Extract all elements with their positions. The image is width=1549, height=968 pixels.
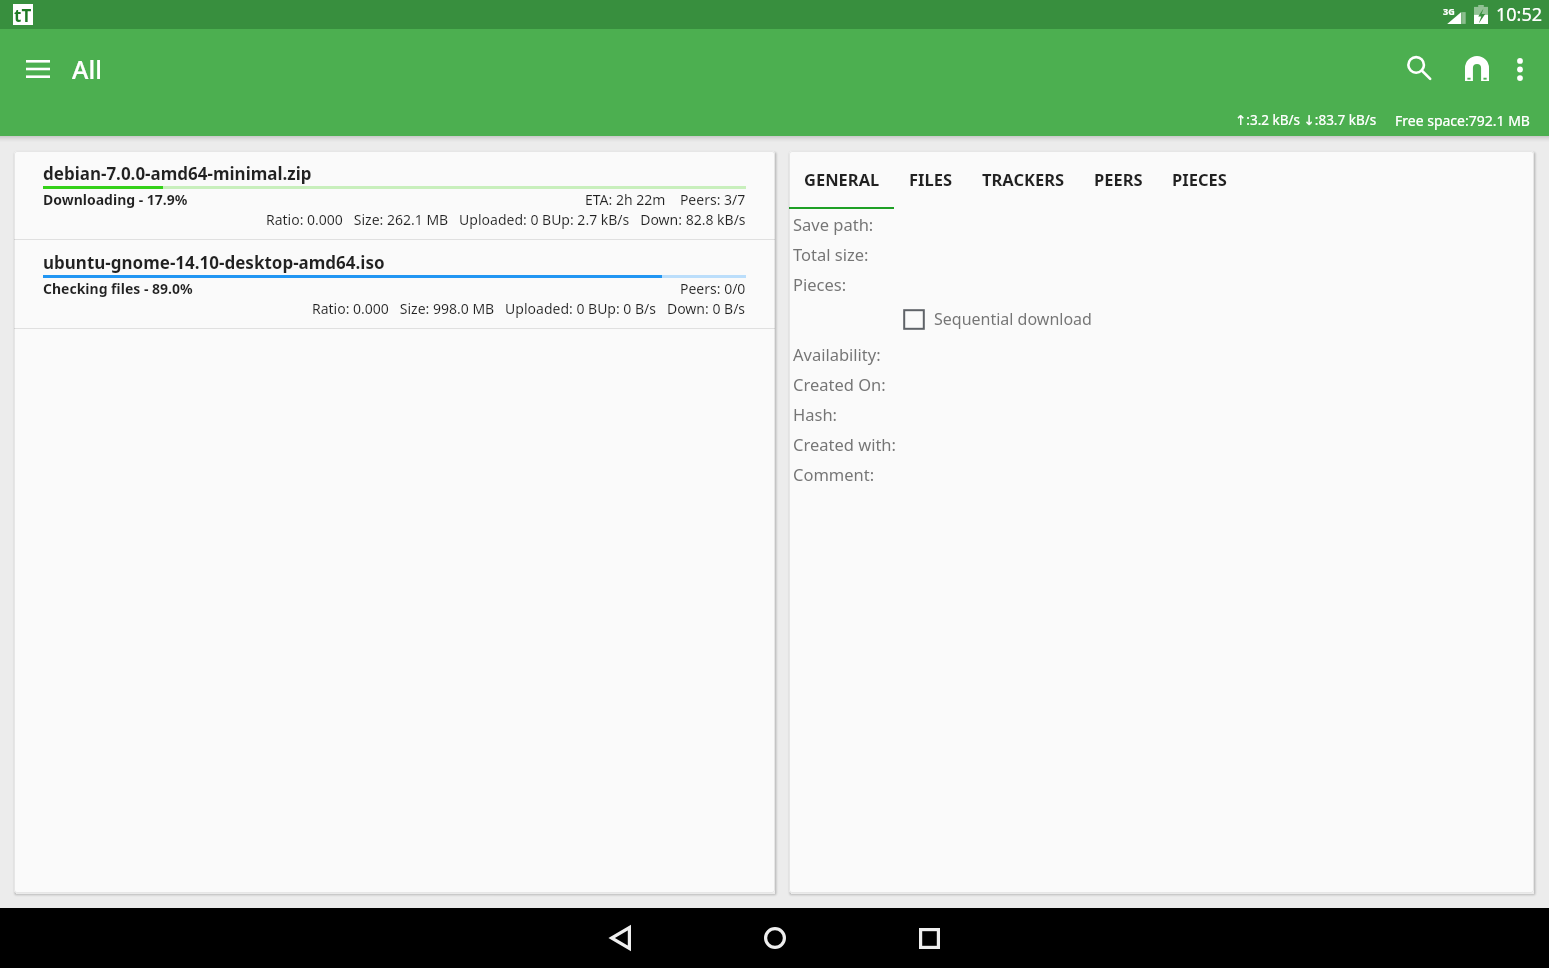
button[interactable]: Recent apps [899,918,959,958]
button[interactable]: Search [1395,44,1443,92]
staticText: Availability: [793,343,881,365]
staticText: Save path: [793,213,874,235]
button[interactable]: debian-7.0.0-amd64-minimal.zip [14,151,775,239]
staticText: PIECES [1172,168,1227,190]
button[interactable]: More options [1498,47,1542,91]
button[interactable]: Sequential download [903,308,1092,330]
button[interactable]: Back [590,918,650,958]
staticText: Created with: [793,433,896,455]
staticText: Comment: [793,463,875,485]
staticText: 10:52 [1496,2,1543,27]
staticText: Ratio: 0.000 Size: 998.0 MB Uploaded: 0 … [312,299,746,318]
staticText: Ratio: 0.000 Size: 262.1 MB Uploaded: 0 … [266,210,746,229]
staticText: FILES [909,168,953,190]
staticText: ubuntu-gnome-14.10-desktop-amd64.iso [43,251,385,274]
staticText: All [72,52,102,86]
staticText: 3G [1443,5,1455,17]
staticText: Sequential download [934,308,1092,330]
staticText: tT [14,4,32,25]
button[interactable]: FILES [894,151,967,209]
button[interactable]: Add magnet link [1453,44,1501,92]
staticText: Total size: [793,243,869,265]
staticText: Downloading - 17.9% [43,190,188,209]
button[interactable]: ubuntu-gnome-14.10-desktop-amd64.iso [14,240,775,328]
staticText: ↑:3.2 kB/s ↓:83.7 kB/s [1235,111,1377,129]
staticText: Peers: 0/0 [680,279,746,298]
staticText: GENERAL [804,168,880,190]
staticText: Created On: [793,373,886,395]
button[interactable]: PIECES [1157,151,1241,209]
staticText: Checking files - 89.0% [43,279,193,298]
button[interactable]: Menu [15,46,61,92]
button[interactable]: PEERS [1079,151,1157,209]
button[interactable]: GENERAL [789,151,894,209]
button[interactable]: TRACKERS [967,151,1079,209]
staticText: debian-7.0.0-amd64-minimal.zip [43,162,312,185]
staticText: TRACKERS [982,168,1065,190]
staticText: PEERS [1094,168,1143,190]
staticText: Free space:792.1 MB [1395,111,1530,130]
staticText: ETA: 2h 22m Peers: 3/7 [585,190,746,209]
button[interactable]: Home [745,918,805,958]
staticText: Hash: [793,403,838,425]
staticText: Pieces: [793,273,847,295]
